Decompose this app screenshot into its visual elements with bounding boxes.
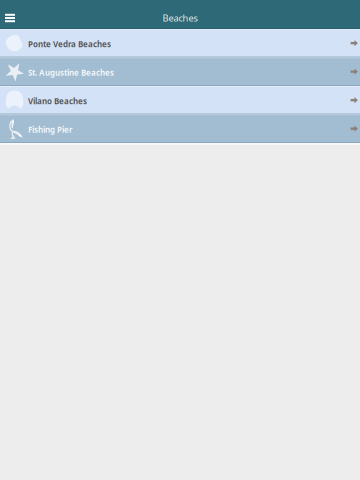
- staticText: Ponte Vedra Beaches: [28, 39, 111, 49]
- button[interactable]: St. Augustine Beaches: [0, 57, 360, 86]
- button[interactable]: Vilano Beaches: [0, 86, 360, 114]
- button[interactable]: Menu: [0, 12, 20, 24]
- button[interactable]: Fishing Pier: [0, 114, 360, 143]
- staticText: Vilano Beaches: [28, 96, 87, 106]
- staticText: Fishing Pier: [28, 124, 73, 135]
- staticText: St. Augustine Beaches: [28, 67, 114, 78]
- staticText: Beaches: [162, 12, 197, 24]
- button[interactable]: Ponte Vedra Beaches: [0, 29, 360, 57]
